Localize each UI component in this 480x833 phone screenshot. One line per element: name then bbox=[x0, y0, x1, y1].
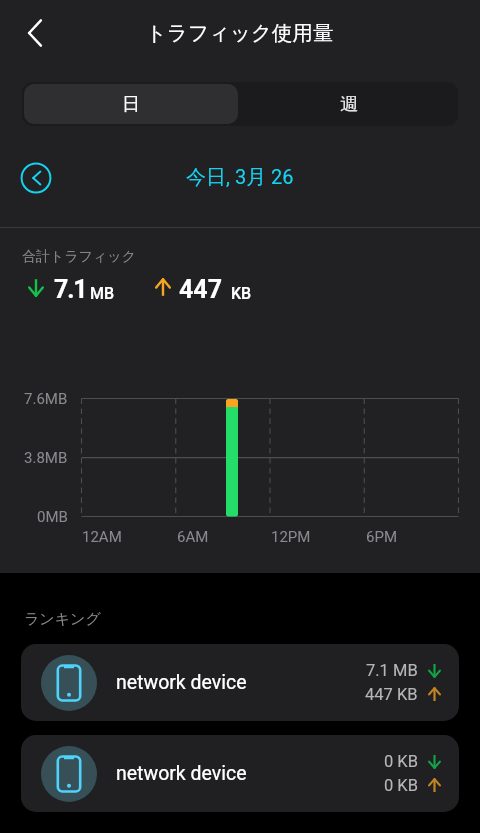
staticText: 12AM bbox=[82, 528, 122, 546]
staticText: 日 bbox=[122, 93, 140, 116]
button[interactable]: 日 bbox=[24, 84, 238, 124]
button[interactable]: Back bbox=[9, 7, 61, 59]
button[interactable]: network device bbox=[21, 735, 459, 812]
staticText: 447 bbox=[179, 275, 223, 304]
button[interactable]: Previous day bbox=[14, 156, 58, 200]
staticText: 6PM bbox=[366, 528, 397, 546]
button[interactable]: 今日, 3月 26 bbox=[186, 165, 294, 190]
staticText: MB bbox=[90, 284, 115, 303]
staticText: 0 KB bbox=[384, 776, 418, 795]
staticText: 6AM bbox=[177, 528, 209, 546]
staticText: 週 bbox=[340, 93, 358, 116]
staticText: トラフィック使用量 bbox=[146, 20, 334, 46]
staticText: network device bbox=[116, 762, 247, 785]
staticText: 7.6MB bbox=[24, 390, 68, 408]
staticText: 0 KB bbox=[384, 752, 418, 771]
staticText: ランキング bbox=[24, 610, 101, 629]
staticText: network device bbox=[116, 671, 247, 694]
staticText: 合計トラフィック bbox=[22, 248, 136, 266]
staticText: KB bbox=[231, 284, 252, 303]
staticText: 0MB bbox=[37, 508, 68, 526]
staticText: 7.1 bbox=[54, 275, 87, 304]
button[interactable]: 週 bbox=[240, 82, 458, 126]
button[interactable]: network device bbox=[21, 644, 459, 721]
staticText: 3.8MB bbox=[24, 449, 68, 467]
staticText: 7.1 MB bbox=[366, 661, 418, 680]
staticText: 12PM bbox=[271, 528, 311, 546]
staticText: 447 KB bbox=[365, 685, 418, 704]
